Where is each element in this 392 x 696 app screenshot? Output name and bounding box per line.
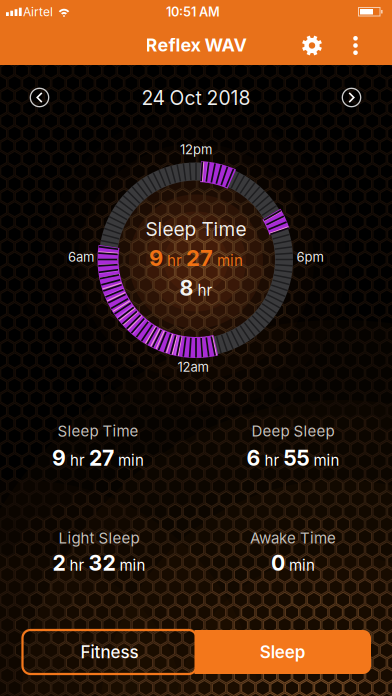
staticText: 12pm [180,142,212,157]
staticText: 6pm [296,249,323,265]
staticText: Airtel [23,5,53,19]
button[interactable]: More options [337,25,373,65]
staticText: 0 min [271,550,315,576]
staticText: Sleep Time [145,217,246,241]
staticText: 10:51 AM [166,4,220,20]
staticText: Fitness [80,642,138,662]
staticText: Awake Time [250,529,336,547]
staticText: Sleep Time [57,422,138,440]
button[interactable]: Sleep [194,630,371,674]
button[interactable]: Previous day [19,77,59,117]
staticText: 6am [68,249,94,265]
staticText: 6 hr 55 min [246,445,339,471]
button[interactable]: Next day [331,77,371,117]
staticText: 12am [177,359,208,375]
staticText: Sleep [260,642,306,662]
staticText: 2 hr 32 min [52,550,145,576]
staticText: 24 Oct 2018 [141,86,250,110]
staticText: Light Sleep [58,529,139,547]
button[interactable]: Settings [292,25,332,65]
button[interactable]: Fitness [22,630,196,674]
staticText: Deep Sleep [251,422,334,440]
staticText: Reflex WAV [145,34,246,56]
staticText: 8 hr [179,275,212,301]
staticText: 9 hr 27 min [149,245,243,271]
staticText: 9 hr 27 min [52,445,144,471]
